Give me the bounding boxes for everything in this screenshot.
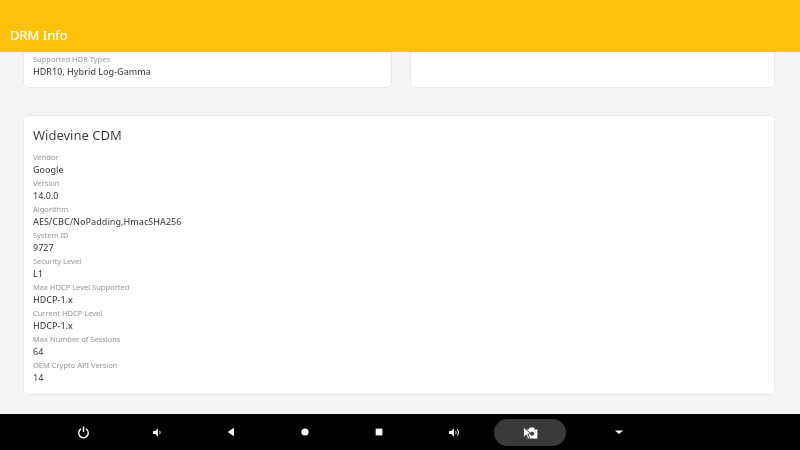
button[interactable]: Power bbox=[68, 417, 98, 447]
staticText: HDR10, Hybrid Log-Gamma bbox=[33, 65, 151, 77]
button[interactable] bbox=[410, 46, 775, 88]
staticText: Current HDCP Level bbox=[33, 308, 103, 318]
staticText: Version bbox=[33, 178, 60, 188]
staticText: Widevine CDM bbox=[33, 126, 122, 144]
staticText: Max HDCP Level Supported bbox=[33, 282, 130, 292]
staticText: 14 bbox=[33, 371, 44, 383]
staticText: 64 bbox=[33, 345, 44, 357]
staticText: DRM Info bbox=[10, 26, 68, 44]
button[interactable]: Volume up bbox=[438, 417, 468, 447]
staticText: Google bbox=[33, 163, 64, 175]
staticText: HDCP-1.x bbox=[33, 319, 73, 331]
button[interactable]: Take screenshot bbox=[494, 419, 566, 446]
staticText: Algorithm bbox=[33, 204, 69, 214]
button[interactable]: Recent apps bbox=[364, 417, 394, 447]
button[interactable]: Volume down bbox=[142, 417, 172, 447]
staticText: 14.0.0 bbox=[33, 189, 59, 201]
staticText: Supported HDR Types bbox=[33, 54, 111, 64]
button[interactable]: Home bbox=[290, 417, 320, 447]
staticText: HDCP-1.x bbox=[33, 293, 73, 305]
staticText: L1 bbox=[33, 267, 43, 279]
staticText: OEM Crypto API Version bbox=[33, 360, 118, 370]
button[interactable]: Supported HDR Types bbox=[23, 46, 392, 88]
staticText: Vendor bbox=[33, 152, 59, 162]
staticText: Max Number of Sessions bbox=[33, 334, 121, 344]
staticText: 9727 bbox=[33, 241, 54, 253]
button[interactable]: Widevine CDM bbox=[23, 115, 775, 395]
staticText: AES/CBC/NoPadding,HmacSHA256 bbox=[33, 215, 182, 227]
button[interactable]: Back bbox=[216, 417, 246, 447]
button[interactable]: More bbox=[608, 421, 630, 443]
staticText: System ID bbox=[33, 230, 69, 240]
staticText: Security Level bbox=[33, 256, 82, 266]
